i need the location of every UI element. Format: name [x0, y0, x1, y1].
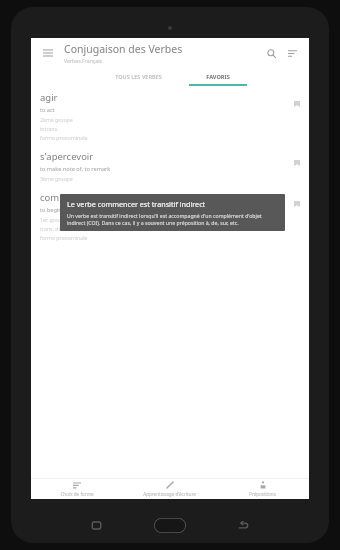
button[interactable]: Menu — [39, 44, 57, 62]
staticText: to begin, to start — [40, 206, 84, 214]
staticText: 1er groupe — [40, 216, 68, 223]
staticText: Conjugaison des Verbes — [64, 42, 183, 56]
staticText: forme pronominale — [40, 134, 88, 141]
button[interactable]: Search — [262, 44, 280, 62]
staticText: Prépositions — [249, 491, 276, 497]
staticText: Verbes Français — [64, 57, 103, 64]
staticText: commencer — [40, 191, 94, 204]
staticText: Choix de forme — [60, 491, 94, 497]
staticText: Le verbe commencer est transitif indirec… — [67, 199, 206, 209]
button[interactable]: agir — [31, 86, 309, 145]
button[interactable]: s'apercevoir — [31, 145, 309, 186]
staticText: 3ème groupe — [40, 175, 73, 182]
button[interactable]: TOUS LES VERBES — [91, 68, 185, 86]
staticText: agir — [40, 91, 58, 104]
staticText: s'apercevoir — [40, 150, 94, 163]
button[interactable]: Choix de forme — [31, 479, 123, 499]
button[interactable]: Prépositions — [216, 479, 309, 499]
button[interactable]: Sort — [283, 44, 301, 62]
button[interactable]: commencer — [31, 186, 309, 245]
staticText: TOUS LES VERBES — [115, 73, 162, 81]
staticText: intrans. — [40, 125, 59, 132]
staticText: to act — [40, 106, 55, 114]
button[interactable]: Bookmark — [291, 198, 303, 210]
staticText: FAVORIS — [206, 73, 230, 81]
staticText: trans. direct trans. indir. intrans. — [40, 225, 120, 232]
staticText: Un verbe est transitif indirect lorsqu'i… — [67, 212, 278, 226]
other: Home — [154, 518, 186, 533]
staticText: to make note of, to remark — [40, 165, 111, 173]
button[interactable]: Bookmark — [291, 98, 303, 110]
staticText: Apprentissage d'écriture — [143, 491, 196, 497]
button[interactable]: Apprentissage d'écriture — [123, 479, 216, 499]
staticText: 2ème groupe — [40, 116, 73, 123]
other: Back — [238, 520, 249, 531]
staticText: forme pronominale — [40, 234, 88, 241]
button[interactable]: Bookmark — [291, 157, 303, 169]
button[interactable]: FAVORIS — [185, 68, 250, 86]
other: Recents — [91, 520, 102, 531]
